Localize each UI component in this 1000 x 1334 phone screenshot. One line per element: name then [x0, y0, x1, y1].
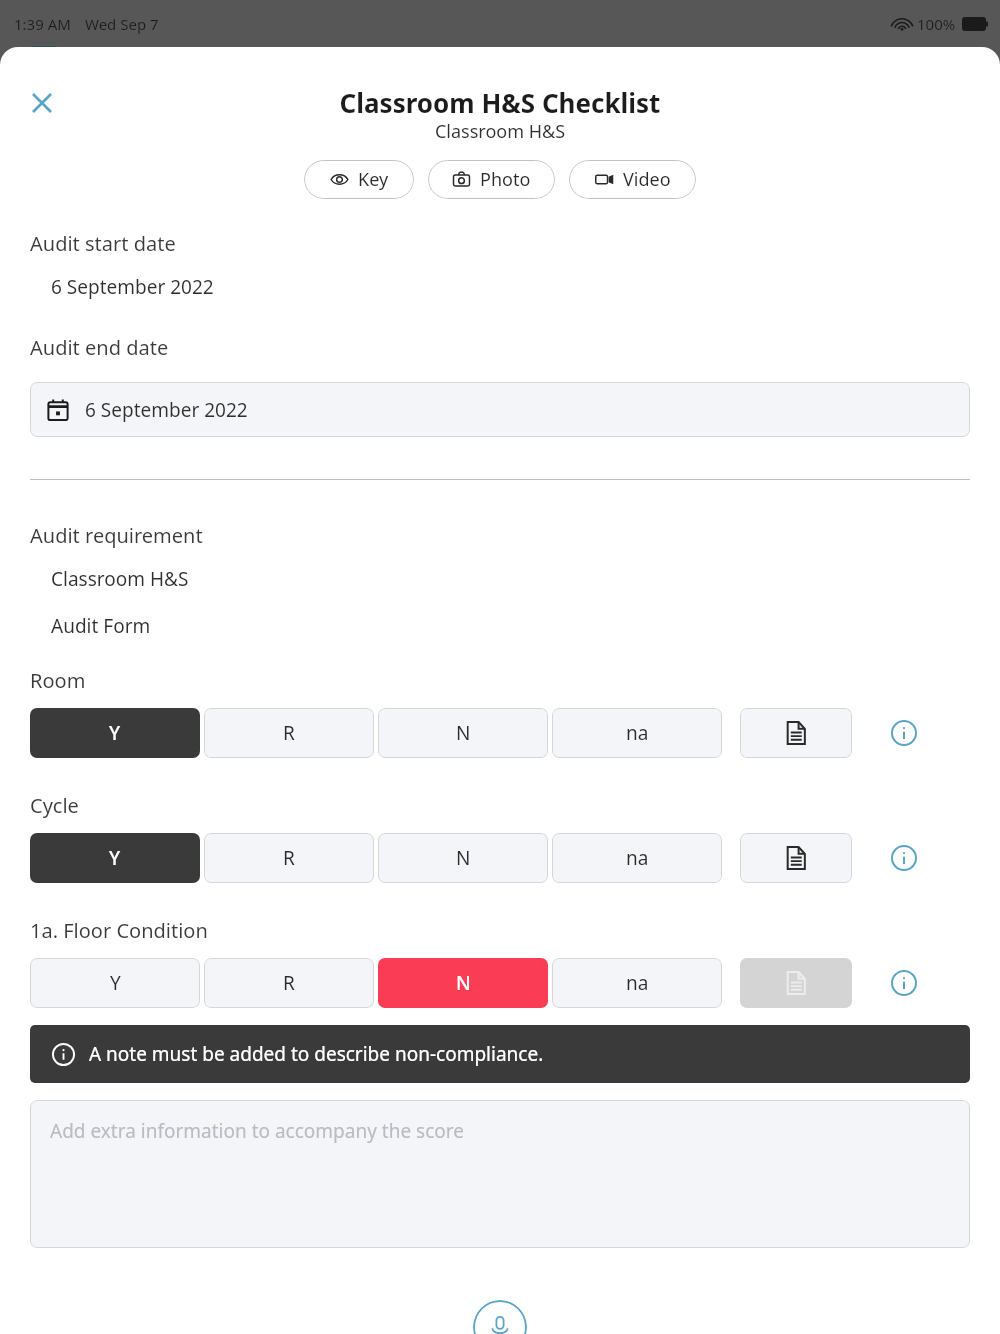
staticText: N	[456, 970, 471, 996]
staticText: 1:39 AM	[14, 14, 71, 34]
staticText: 6 September 2022	[51, 274, 214, 300]
button[interactable]: na	[552, 958, 722, 1008]
staticText: R	[283, 845, 295, 871]
button[interactable]: Photo	[428, 160, 555, 199]
staticText: na	[626, 970, 649, 996]
button[interactable]: R	[204, 708, 374, 758]
button[interactable]: 6 September 2022	[30, 382, 970, 437]
staticText: Y	[109, 845, 121, 871]
staticText: Audit requirement	[30, 522, 203, 549]
button[interactable]: Key	[304, 160, 414, 199]
button[interactable]: R	[204, 958, 374, 1008]
button[interactable]: Voice input	[473, 1300, 527, 1334]
button[interactable]: R	[204, 833, 374, 883]
button[interactable]: N	[378, 708, 548, 758]
staticText: Classroom H&S Checklist	[0, 85, 1000, 120]
staticText: N	[456, 845, 471, 871]
staticText: na	[626, 720, 649, 746]
button[interactable]: Y	[30, 708, 200, 758]
staticText: Classroom H&S	[51, 566, 189, 592]
staticText: Cycle	[30, 792, 79, 819]
staticText: N	[456, 720, 471, 746]
staticText: Wed Sep 7	[85, 14, 159, 34]
staticText: Add extra information to accompany the s…	[50, 1118, 464, 1144]
button[interactable]: N	[378, 958, 548, 1008]
button[interactable]: Y	[30, 958, 200, 1008]
staticText: Classroom H&S	[0, 119, 1000, 144]
staticText: Audited	[460, 42, 541, 71]
button[interactable]: Add note	[740, 833, 852, 883]
staticText: R	[283, 970, 295, 996]
staticText: Audit start date	[30, 230, 176, 257]
button[interactable]: Add note	[740, 708, 852, 758]
button[interactable]: Close	[18, 79, 66, 127]
staticText: Video	[623, 167, 671, 192]
staticText: R	[283, 720, 295, 746]
staticText: na	[626, 845, 649, 871]
staticText: 6 September 2022	[85, 397, 248, 423]
button[interactable]: Video	[569, 160, 696, 199]
button[interactable]: na	[552, 708, 722, 758]
button[interactable]: N	[378, 833, 548, 883]
button[interactable]: Add note	[740, 958, 852, 1008]
button[interactable]: na	[552, 833, 722, 883]
staticText: Y	[109, 720, 121, 746]
button[interactable]: Info	[882, 711, 926, 755]
staticText: 1a. Floor Condition	[30, 917, 208, 944]
staticText: Photo	[480, 167, 531, 192]
staticText: Audit end date	[30, 334, 169, 361]
button[interactable]: A note must be added to describe non-com…	[30, 1025, 970, 1083]
staticText: Audit Form	[51, 613, 151, 639]
button[interactable]: Info	[882, 836, 926, 880]
button[interactable]: Info	[882, 961, 926, 1005]
staticText: Room	[30, 667, 86, 694]
button[interactable]: Add extra information to accompany the s…	[30, 1100, 970, 1248]
staticText: Key	[358, 167, 389, 192]
staticText: A note must be added to describe non-com…	[89, 1041, 544, 1067]
button[interactable]: Y	[30, 833, 200, 883]
staticText: Y	[110, 970, 121, 996]
staticText: 100%	[917, 14, 956, 34]
